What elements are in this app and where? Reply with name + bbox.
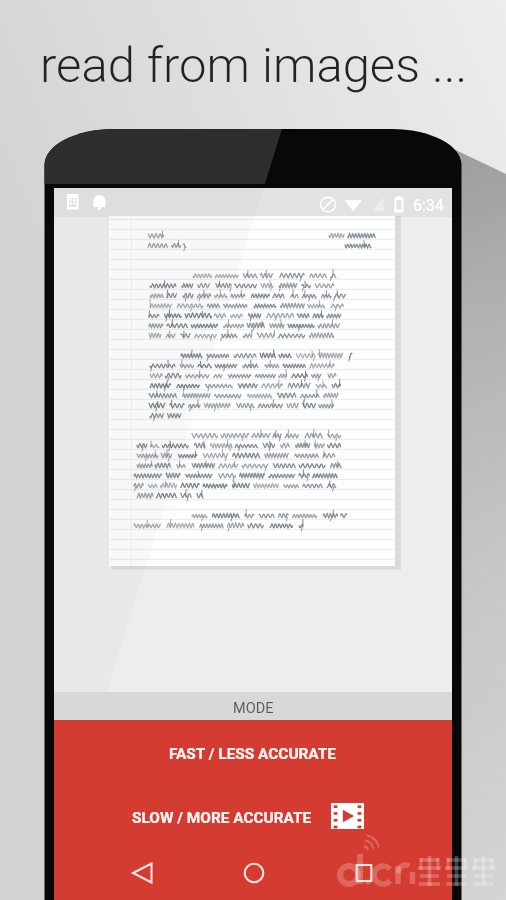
button[interactable]: Recent apps xyxy=(331,848,397,898)
staticText: 6:34 xyxy=(413,196,444,215)
button[interactable]: SLOW / MORE ACCURATE xyxy=(49,790,447,845)
staticText: SLOW / MORE ACCURATE xyxy=(132,809,312,827)
staticText: read from images ... xyxy=(40,37,468,94)
button[interactable]: FAST / LESS ACCURATE xyxy=(54,718,452,789)
button[interactable]: Home xyxy=(221,848,287,898)
button[interactable]: Back xyxy=(110,848,176,898)
staticText: MODE xyxy=(233,700,274,717)
button[interactable]: MODE xyxy=(54,694,452,722)
staticText: FAST / LESS ACCURATE xyxy=(169,745,337,763)
